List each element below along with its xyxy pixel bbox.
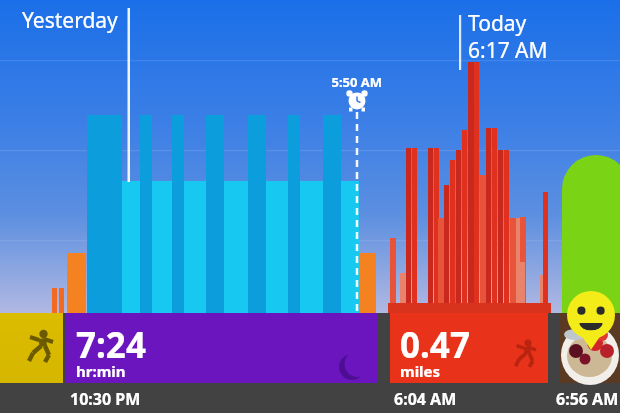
button[interactable]: Meal photo	[560, 313, 620, 383]
button[interactable]	[66, 313, 377, 383]
button[interactable]: Activity	[0, 313, 63, 383]
button[interactable]: Alarm 5:50 AM	[340, 88, 376, 118]
button[interactable]	[390, 313, 548, 383]
button[interactable]: Location card	[562, 155, 620, 313]
